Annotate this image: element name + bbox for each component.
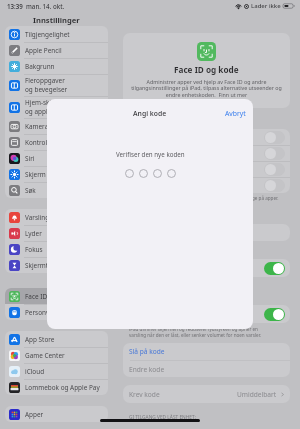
staticText: Lader ikke (251, 2, 281, 10)
button[interactable]: Kamera (5, 118, 108, 134)
staticText: Lyder (25, 229, 42, 238)
button[interactable]: iPhone og iPad-apper (123, 129, 290, 145)
staticText: Face ID er oppmerksom på om du ser på iP… (129, 280, 287, 292)
staticText: man. 14. okt. (26, 2, 65, 10)
button[interactable]: Apple Pencil (5, 42, 108, 58)
staticText: Administrer apper ved hjelp av Face ID o… (127, 78, 286, 99)
button[interactable]: Oppmerksomhetsbevisste funksjoner (123, 305, 290, 323)
staticText: Verifiser den nye koden (116, 150, 185, 158)
staticText: Kontrollsenter (25, 138, 68, 147)
button[interactable]: Autofyll passord (123, 161, 290, 177)
button[interactable]: Game Center (5, 347, 108, 363)
button[interactable]: iTunes og App Store (123, 145, 290, 161)
button[interactable]: Lyder (5, 225, 108, 241)
staticText: Lommebok og Apple Pay (25, 383, 100, 392)
button[interactable]: Apper (5, 406, 108, 422)
button[interactable]: Skjerm (5, 166, 108, 182)
button[interactable]: Oppmerksomhetsbevisst (123, 259, 290, 277)
staticText: Personvern (25, 308, 60, 317)
button[interactable]: Slå på kode (123, 343, 290, 360)
staticText: Autofyll passord (129, 165, 177, 173)
button[interactable]: Apple Pay (123, 177, 290, 193)
staticText: og appbibliotek (25, 107, 72, 116)
staticText: Face ID brukes til å låse opp iPad, aute… (129, 195, 287, 207)
staticText: 13:39 (7, 2, 23, 10)
button[interactable]: Bakgrunn (5, 58, 108, 74)
button[interactable]: Krev kode (123, 385, 290, 403)
staticText: iCloud (25, 367, 45, 376)
button[interactable]: Personvern (5, 304, 108, 320)
staticText: Hjem-skjerm (25, 98, 64, 107)
staticText: iTunes og App Store (129, 149, 188, 157)
staticText: Angi kode (133, 109, 167, 118)
button[interactable]: Hjem-skjerm (5, 96, 108, 118)
staticText: Innstillinger (33, 15, 80, 25)
staticText: Fleroppgaver (25, 76, 65, 85)
button[interactable]: Kontrollsenter (5, 134, 108, 150)
button[interactable]: Søk (5, 182, 108, 198)
button[interactable]: App Store (5, 331, 108, 347)
button[interactable]: Fokus (5, 241, 108, 257)
button[interactable]: Siri (5, 150, 108, 166)
staticText: Krev kode (129, 390, 160, 399)
staticText: Skjerm (25, 170, 46, 179)
staticText: Apper (25, 410, 44, 419)
staticText: Varslinger (25, 213, 56, 222)
staticText: GI TILGANG VED LÅST ENHET: (129, 414, 196, 421)
staticText: behandles og beskyttes. Om Face ID og (129, 206, 287, 212)
button[interactable]: Lommebok og Apple Pay (5, 379, 108, 395)
staticText: Face ID og kode (25, 292, 73, 301)
staticText: iPad dimmer skjermen og reduserer lydsty… (129, 326, 294, 338)
button[interactable]: Varslinger (5, 209, 108, 225)
staticText: Slå på kode (129, 347, 165, 356)
staticText: Siri (25, 154, 35, 163)
staticText: Umiddelbart (237, 390, 277, 399)
button[interactable]: Avbryt (218, 109, 253, 118)
staticText: Tilgjengelighet (25, 30, 70, 39)
staticText: Endre kode (129, 365, 165, 374)
staticText: Face ID og kode (174, 64, 239, 75)
staticText: Bakgrunn (25, 62, 55, 71)
staticText: App Store (25, 335, 55, 344)
button[interactable]: Face ID og kode (5, 288, 108, 304)
staticText: Avbryt (225, 109, 246, 118)
staticText: Skjermtid (25, 261, 54, 270)
staticText: og bevegelser (25, 85, 68, 94)
staticText: Fokus (25, 245, 43, 254)
button[interactable]: Tilgjengelighet (5, 26, 108, 42)
staticText: Apple Pencil (25, 46, 62, 55)
staticText: Kamera (25, 122, 49, 131)
button[interactable]: iCloud (5, 363, 108, 379)
staticText: Game Center (25, 351, 65, 360)
button[interactable]: Endre kode (123, 361, 290, 377)
button[interactable]: Skjermtid (5, 257, 108, 273)
button[interactable]: Fleroppgaver (5, 74, 108, 96)
staticText: Søk (25, 186, 36, 195)
